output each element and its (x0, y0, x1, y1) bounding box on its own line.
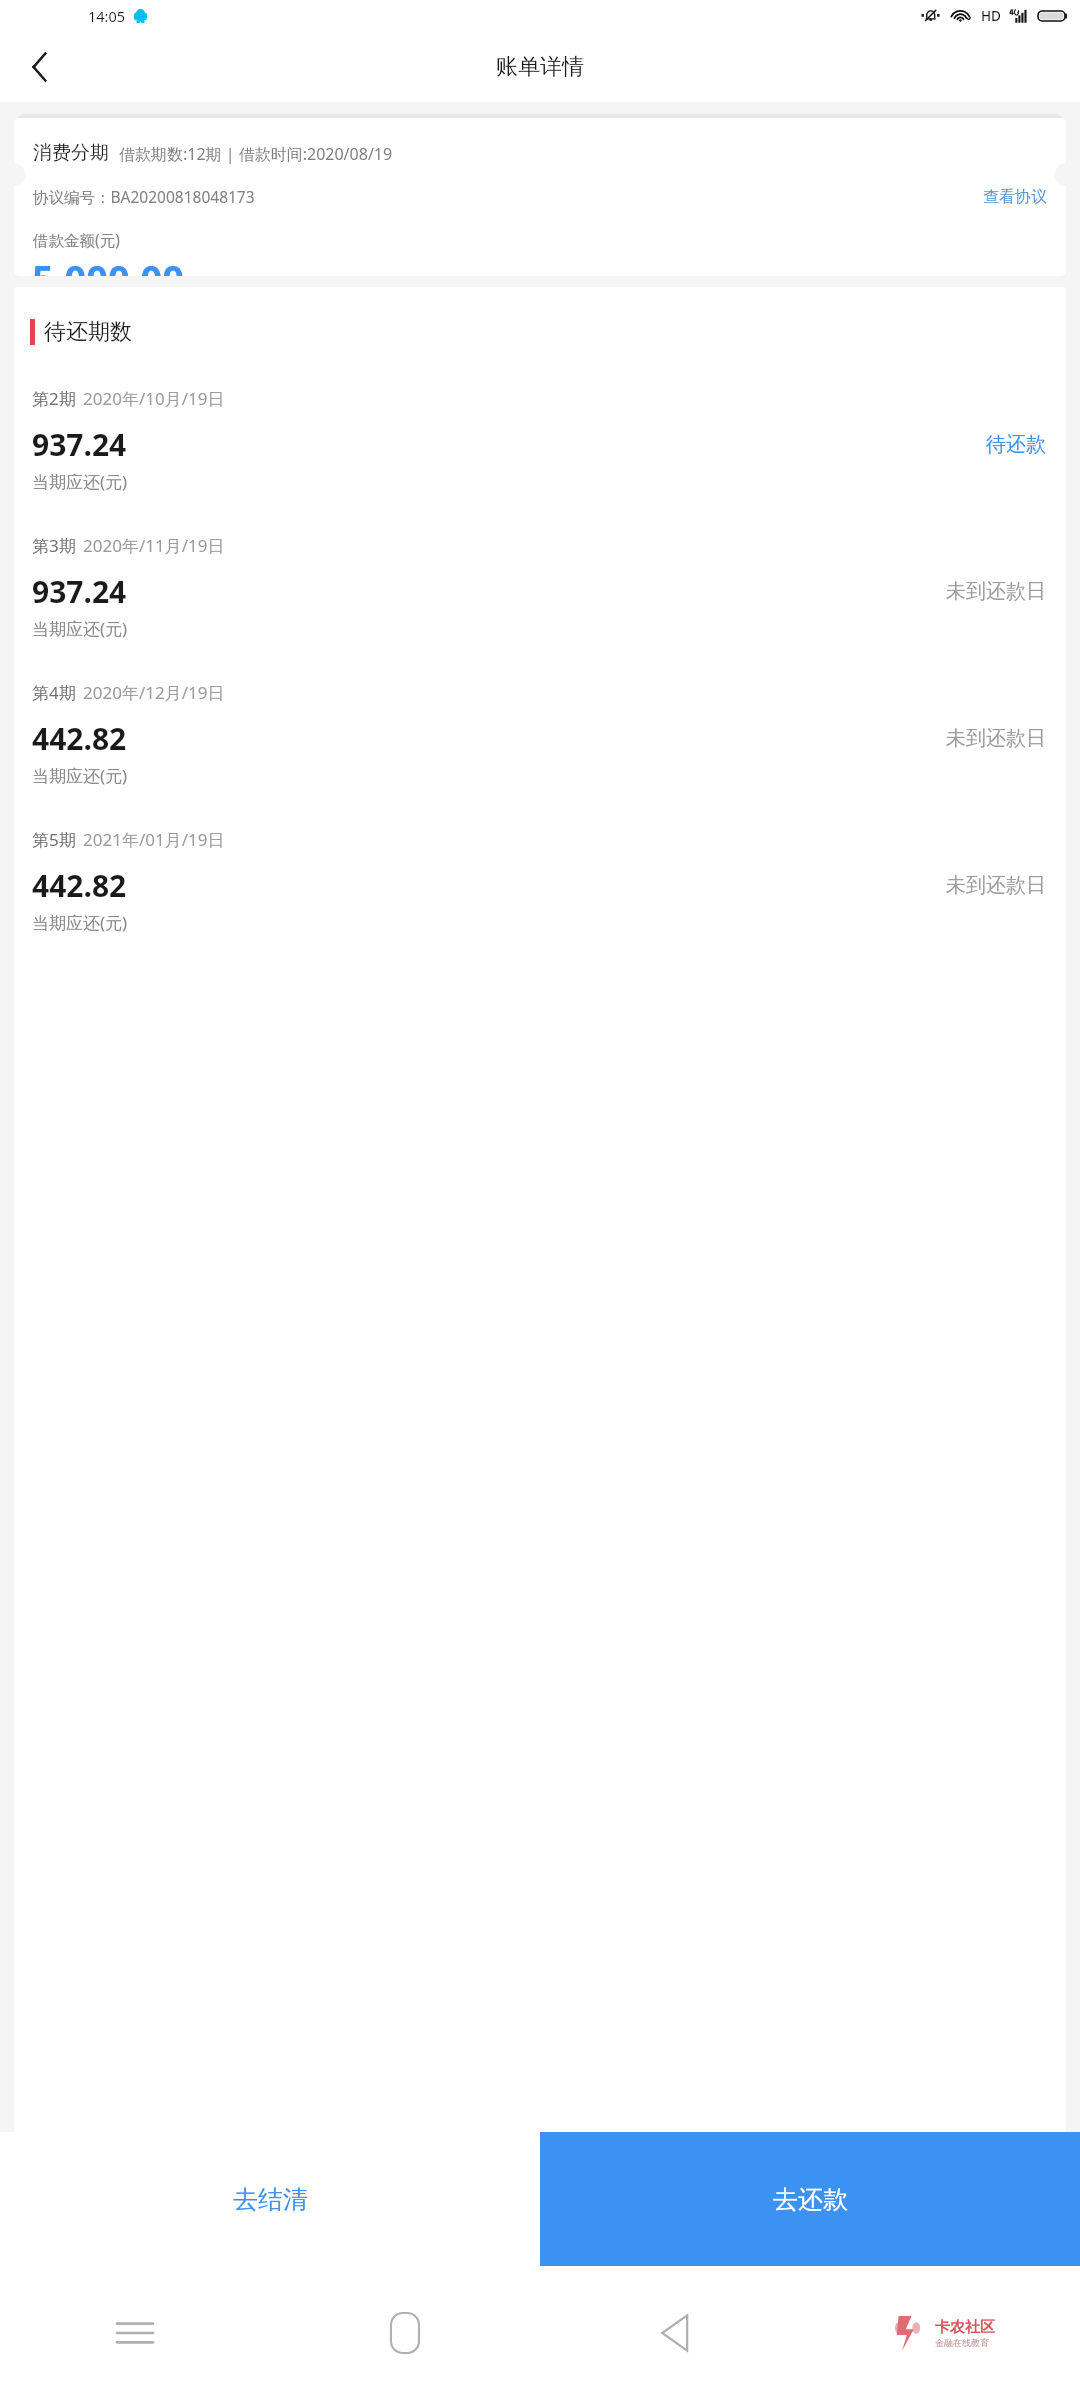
staticText: 442.82 (32, 865, 127, 906)
button[interactable]: 查看协议 (983, 187, 1047, 207)
staticText: 937.24 (32, 424, 127, 465)
staticText: 2020年/12月/19日 (83, 681, 225, 704)
button[interactable]: 消费分期 (14, 118, 1066, 276)
staticText: 消费分期 (33, 141, 109, 165)
staticText: 937.24 (32, 571, 127, 612)
staticText: 借款期数:12期 | 借款时间:2020/08/19 (119, 143, 393, 165)
staticText: 第4期 (32, 681, 76, 704)
staticText: 协议编号：BA20200818048173 (33, 186, 255, 207)
staticText: 当期应还(元) (32, 617, 128, 640)
staticText: 5,000.00 (32, 252, 184, 276)
staticText: 未到还款日 (946, 726, 1046, 751)
staticText: 去结清 (233, 2184, 308, 2215)
staticText: 去还款 (773, 2184, 848, 2215)
staticText: 金融在线教育 (935, 2337, 989, 2348)
staticText: 第3期 (32, 534, 76, 557)
staticText: 2020年/10月/19日 (83, 387, 225, 410)
staticText: 当期应还(元) (32, 764, 128, 787)
staticText: 2021年/01月/19日 (83, 828, 225, 851)
staticText: 2020年/11月/19日 (83, 534, 225, 557)
staticText: 未到还款日 (946, 579, 1046, 604)
staticText: 当期应还(元) (32, 911, 128, 934)
staticText: 442.82 (32, 718, 127, 759)
button[interactable]: Back (540, 2266, 810, 2400)
staticText: HD (981, 7, 1001, 25)
staticText: 借款金额(元) (33, 229, 120, 250)
staticText: 当期应还(元) (32, 470, 128, 493)
staticText: 待还期数 (44, 318, 132, 346)
button[interactable]: 去还款 (540, 2132, 1080, 2266)
staticText: 账单详情 (496, 53, 584, 81)
staticText: 第2期 (32, 387, 76, 410)
button[interactable]: Home (270, 2266, 540, 2400)
button[interactable]: 第3期 (14, 534, 1066, 681)
staticText: 卡农社区 (935, 2318, 995, 2337)
button[interactable]: 第4期 (14, 681, 1066, 828)
button[interactable]: 第2期 (14, 387, 1066, 534)
staticText: 待还款 (986, 432, 1046, 457)
button[interactable]: Recent apps (0, 2266, 270, 2400)
staticText: 未到还款日 (946, 873, 1046, 898)
staticText: 查看协议 (983, 187, 1047, 207)
staticText: 14:05 (88, 6, 126, 26)
button[interactable]: Back (13, 41, 65, 93)
staticText: 第5期 (32, 828, 76, 851)
button[interactable]: 第5期 (14, 828, 1066, 975)
button[interactable]: 去结清 (0, 2132, 540, 2266)
